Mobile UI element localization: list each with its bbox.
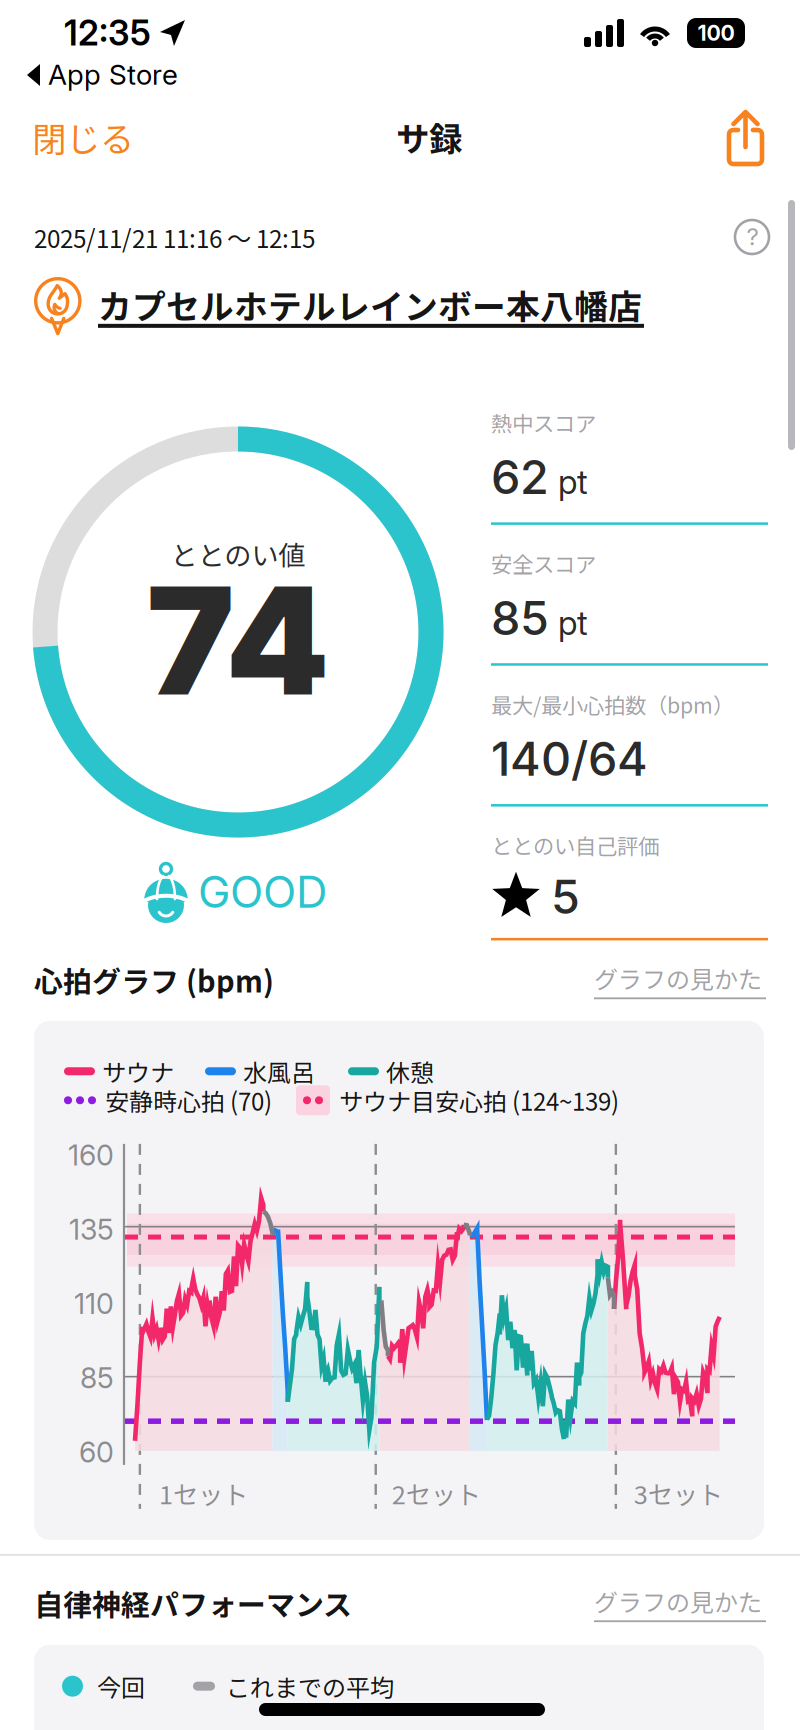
- staticText: ととのい値: [170, 534, 305, 573]
- staticText: 休憩: [386, 1054, 434, 1089]
- staticText: 2セット: [392, 1475, 481, 1512]
- staticText: グラフの見かた: [594, 1584, 762, 1618]
- staticText: 最大/最小心拍数（bpm）: [491, 689, 734, 720]
- staticText: 1セット: [159, 1475, 248, 1512]
- staticText: 5: [551, 868, 580, 925]
- staticText: カプセルホテルレインボー本八幡店: [98, 280, 642, 329]
- staticText: 閉じる: [32, 112, 134, 162]
- staticText: pt: [558, 462, 588, 502]
- button[interactable]: Share: [700, 100, 800, 174]
- button[interactable]: グラフの見かた: [594, 1584, 766, 1622]
- staticText: ととのい自己評価: [491, 830, 659, 860]
- staticText: 12:35: [64, 12, 151, 54]
- staticText: 135: [69, 1212, 114, 1247]
- staticText: 熱中スコア: [491, 407, 596, 438]
- staticText: pt: [558, 603, 588, 643]
- staticText: 110: [74, 1286, 114, 1321]
- staticText: 140/64: [491, 731, 648, 787]
- staticText: 100: [697, 20, 734, 46]
- staticText: これまでの平均: [226, 1669, 394, 1704]
- staticText: 3セット: [634, 1475, 723, 1512]
- staticText: GOOD: [198, 866, 327, 918]
- staticText: 今回: [97, 1669, 145, 1704]
- staticText: ?: [746, 222, 758, 251]
- staticText: App Store: [48, 58, 178, 91]
- button[interactable]: グラフの見かた: [594, 961, 766, 999]
- staticText: サウナ目安心拍 (124~139): [339, 1083, 619, 1118]
- staticText: 安静時心拍 (70): [105, 1083, 272, 1118]
- staticText: 85: [491, 590, 549, 646]
- staticText: 心拍グラフ (bpm): [34, 959, 274, 1001]
- staticText: 2025/11/21 11:16 〜 12:15: [34, 220, 315, 255]
- staticText: サウナ: [102, 1054, 174, 1089]
- staticText: サ録: [396, 113, 462, 161]
- staticText: 自律神経パフォーマンス: [34, 1582, 352, 1624]
- staticText: グラフの見かた: [594, 961, 762, 995]
- staticText: 62: [491, 449, 549, 505]
- staticText: 74: [146, 551, 329, 730]
- staticText: 水風呂: [243, 1054, 315, 1089]
- staticText: 60: [79, 1435, 114, 1469]
- staticText: 85: [80, 1361, 114, 1395]
- button[interactable]: 閉じる: [0, 98, 158, 176]
- button[interactable]: Help: [733, 218, 772, 257]
- staticText: 160: [68, 1138, 114, 1172]
- staticText: 安全スコア: [491, 548, 596, 579]
